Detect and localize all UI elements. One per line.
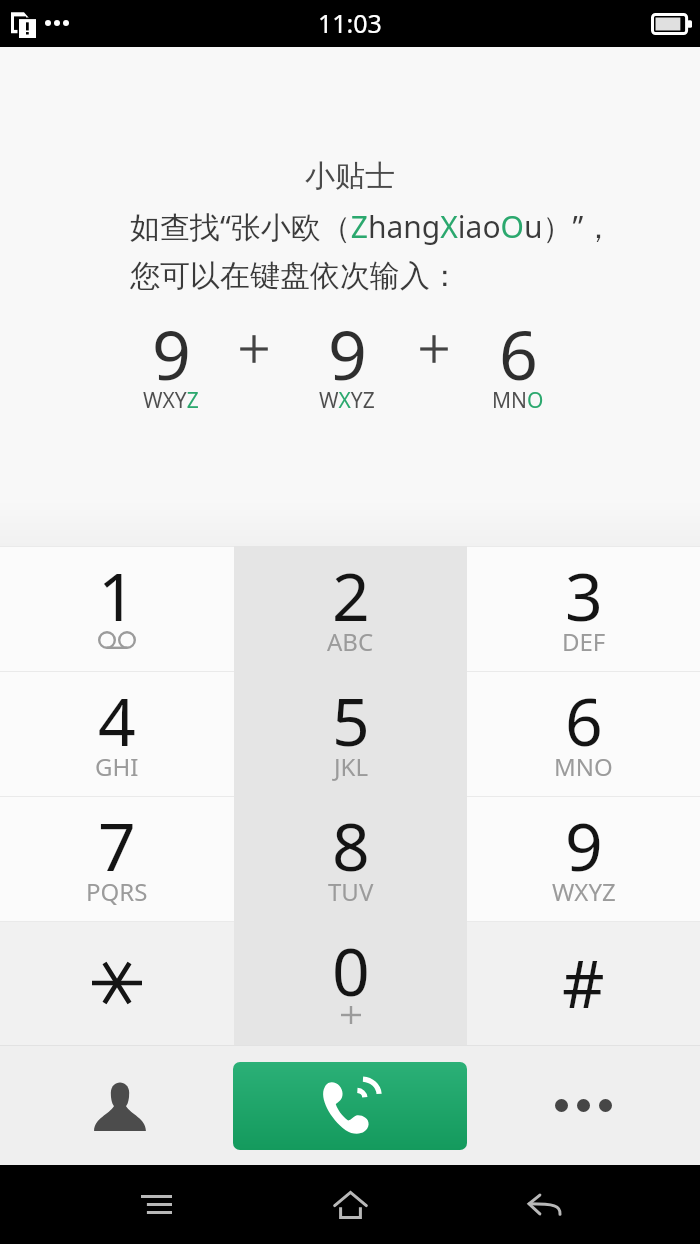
staticText: 4 (98, 675, 136, 765)
button[interactable]: Call (233, 1062, 467, 1150)
staticText: JKL (334, 750, 368, 783)
staticText: # (562, 937, 605, 1027)
staticText: WXYZ (319, 386, 375, 415)
staticText: WXYZ (552, 875, 616, 908)
button[interactable]: 1 (0, 546, 234, 671)
button[interactable]: 7 (0, 796, 234, 921)
button[interactable]: 5 (234, 671, 467, 796)
staticText: GHI (95, 750, 139, 783)
staticText: MNO (492, 386, 544, 415)
staticText: WXYZ (143, 386, 199, 415)
staticText: 9 (152, 307, 191, 400)
button[interactable]: 2 (234, 546, 467, 671)
button[interactable]: 4 (0, 671, 234, 796)
staticText: 8 (332, 800, 370, 890)
button[interactable]: 6 (467, 671, 700, 796)
staticText: MNO (554, 750, 613, 783)
button[interactable]: 9 (467, 796, 700, 921)
button[interactable]: 3 (467, 546, 700, 671)
staticText: 如查找“张小欧（ZhangXiaoOu）”， (130, 206, 614, 247)
staticText: 2 (332, 550, 370, 640)
staticText: 您可以在键盘依次输入： (130, 257, 460, 295)
staticText: 5 (332, 675, 370, 765)
button[interactable]: # (467, 921, 700, 1046)
staticText: 3 (565, 550, 603, 640)
staticText: PQRS (86, 875, 148, 908)
staticText: 6 (565, 675, 603, 765)
button[interactable]: 8 (234, 796, 467, 921)
button[interactable]: More options (467, 1046, 700, 1165)
staticText: 0 (332, 925, 370, 1015)
button[interactable]: Back (505, 1165, 583, 1244)
button[interactable] (0, 921, 234, 1046)
staticText: 11:03 (318, 6, 382, 40)
staticText: DEF (562, 625, 606, 658)
button[interactable]: 0 (234, 921, 467, 1046)
button[interactable]: Contacts (0, 1046, 233, 1165)
staticText: 9 (328, 307, 367, 400)
staticText: 1 (98, 550, 136, 640)
button[interactable]: Home (311, 1165, 389, 1244)
staticText: 6 (499, 307, 538, 400)
staticText: 小贴士 (305, 157, 395, 195)
button[interactable]: Menu (117, 1165, 195, 1244)
staticText: TUV (328, 875, 374, 908)
staticText: 7 (98, 800, 136, 890)
staticText: 9 (565, 800, 603, 890)
staticText: ABC (327, 625, 374, 658)
